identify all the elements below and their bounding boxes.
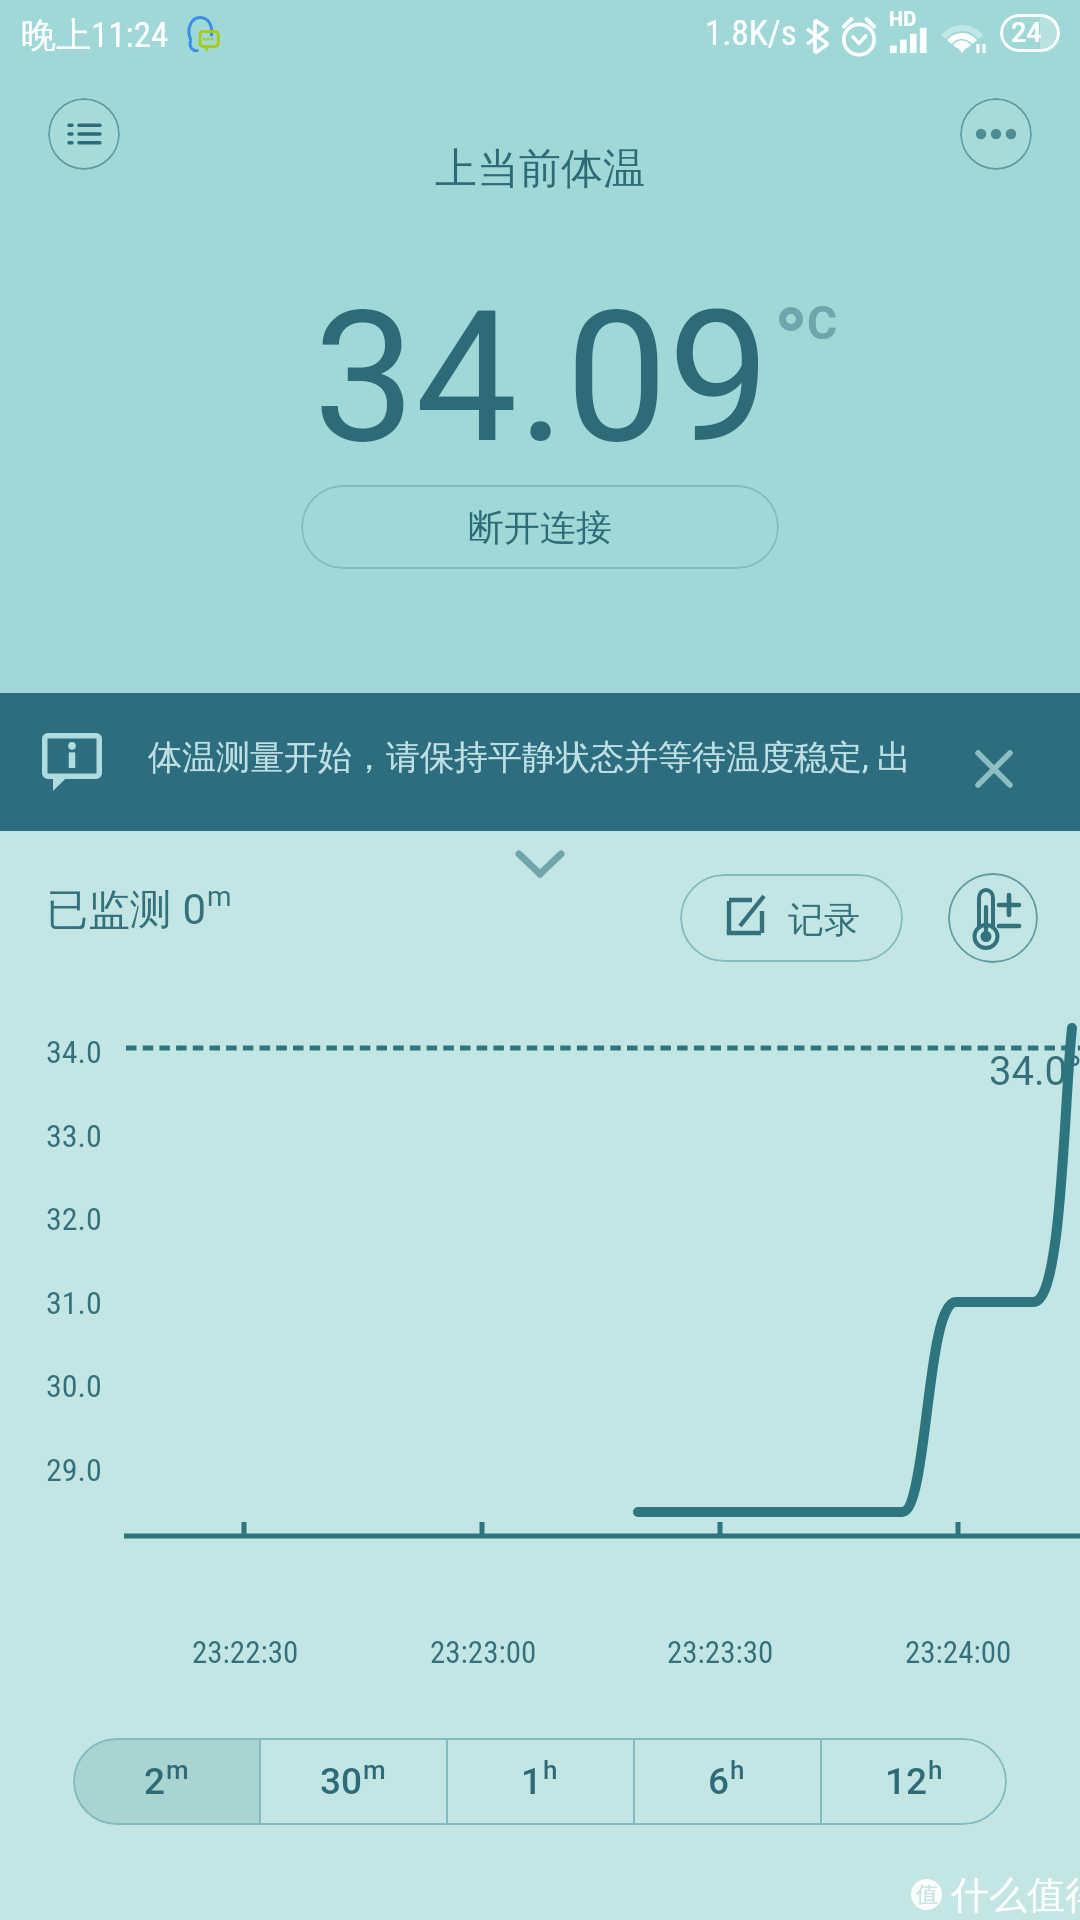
staticText: 31.0 — [46, 1284, 102, 1322]
button[interactable]: More options — [960, 98, 1032, 170]
staticText: 29.0 — [46, 1451, 102, 1489]
staticText: HD — [889, 7, 917, 30]
staticText: 2 — [144, 1760, 166, 1803]
staticText: m — [166, 1755, 189, 1785]
staticText: 30 — [320, 1760, 363, 1803]
staticText: m — [207, 880, 232, 913]
staticText: 已监测 0 — [46, 884, 207, 937]
button[interactable]: 1 — [446, 1738, 633, 1825]
button[interactable]: 6 — [633, 1738, 820, 1825]
staticText: 12 — [885, 1760, 928, 1803]
staticText: 什么值得买 — [951, 1871, 1080, 1919]
button[interactable]: 12 — [820, 1738, 1007, 1825]
button[interactable]: 断开连接 — [301, 485, 779, 569]
staticText: 值 — [916, 1881, 938, 1909]
staticText: h — [543, 1755, 558, 1785]
staticText: 断开连接 — [468, 505, 612, 550]
button[interactable]: Close — [950, 725, 1038, 813]
staticText: 32.0 — [46, 1200, 102, 1238]
staticText: 记录 — [788, 897, 860, 942]
staticText: 体温测量开始，请保持平静状态并等待温度稳定, 出 — [148, 736, 912, 779]
staticText: 23:23:00 — [430, 1634, 537, 1670]
staticText: 34.0° — [989, 1048, 1080, 1095]
staticText: 23:22:30 — [192, 1634, 299, 1670]
staticText: h — [730, 1755, 745, 1785]
button[interactable]: 体温测量开始，请保持平静状态并等待温度稳定, 出 — [0, 693, 1080, 831]
staticText: 30.0 — [46, 1367, 102, 1405]
staticText: 6 — [708, 1760, 730, 1803]
staticText: 1 — [521, 1760, 543, 1803]
staticText: C — [807, 296, 838, 350]
staticText: 24 — [1011, 17, 1042, 49]
staticText: 33.0 — [46, 1117, 102, 1155]
button[interactable]: Temperature settings — [948, 873, 1038, 963]
button[interactable]: 30 — [259, 1738, 446, 1825]
staticText: 34.0 — [46, 1033, 102, 1071]
button[interactable]: 2 — [73, 1738, 259, 1825]
staticText: 23:24:00 — [905, 1634, 1012, 1670]
staticText: m — [363, 1755, 386, 1785]
staticText: 晚上11:24 — [21, 13, 169, 57]
button[interactable]: List — [48, 98, 120, 170]
button[interactable]: Expand — [500, 824, 580, 904]
staticText: 34.09 — [313, 271, 771, 484]
staticText: 上当前体温 — [0, 143, 1080, 196]
staticText: 23:23:30 — [667, 1634, 774, 1670]
staticText: 1.8K/s — [705, 13, 797, 54]
button[interactable]: 记录 — [680, 874, 903, 962]
staticText: h — [928, 1755, 943, 1785]
